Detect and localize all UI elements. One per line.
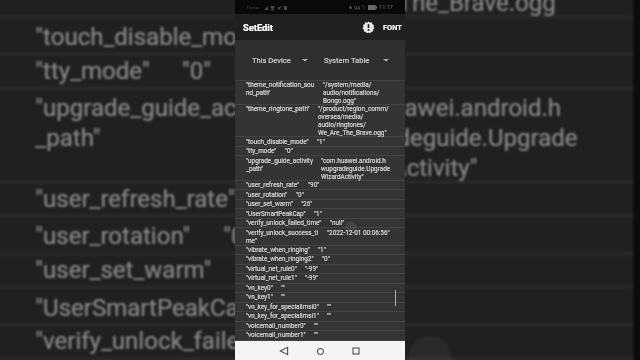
staticText: "verify_unlock_failed_time" bbox=[246, 219, 322, 227]
staticText: "vibrate_when_ringing2" bbox=[246, 255, 314, 263]
staticText: "0" bbox=[182, 56, 212, 86]
button[interactable]: "touch_disable_mode" bbox=[35, 22, 272, 52]
staticText: "90" bbox=[268, 184, 314, 214]
button[interactable]: "user_rotation" bbox=[35, 222, 193, 252]
staticText: "virtual_net_rule0" bbox=[246, 265, 297, 273]
button[interactable]: "vn_key0" bbox=[246, 284, 273, 292]
staticText: FONT bbox=[383, 23, 402, 32]
staticText: "" bbox=[327, 303, 331, 311]
button[interactable]: "user_set_warm" bbox=[246, 200, 293, 208]
button[interactable]: "UserSmartPeakCap" bbox=[35, 293, 261, 323]
button[interactable]: "theme_ringtone_path" bbox=[246, 105, 310, 113]
staticText: "1" bbox=[291, 293, 321, 323]
button[interactable]: This Device bbox=[235, 40, 320, 80]
staticText: "" bbox=[327, 312, 331, 320]
staticText: This Device bbox=[252, 56, 291, 65]
staticText: 11:17 bbox=[379, 4, 393, 11]
staticText: "0" bbox=[285, 147, 293, 155]
staticText: "/product/region_comm/ oversea/media/ au… bbox=[306, 0, 573, 18]
button[interactable]: "tty_mode" bbox=[35, 56, 152, 86]
button[interactable]: "user_refresh_rate" bbox=[246, 181, 300, 189]
staticText: "" bbox=[281, 293, 285, 301]
staticText: "theme_notification_sou nd_path" bbox=[246, 81, 315, 97]
button[interactable]: "upgrade_guide_activity _path" bbox=[35, 94, 287, 154]
staticText: "null" bbox=[330, 219, 345, 227]
staticText: "0" bbox=[322, 255, 330, 263]
staticText: "26" bbox=[301, 200, 313, 208]
button[interactable]: "vn_key1" bbox=[246, 293, 273, 301]
staticText: "user_set_warm" bbox=[35, 255, 212, 285]
button[interactable]: "voicemail_number0" bbox=[246, 322, 306, 330]
staticText: "-99" bbox=[305, 274, 319, 282]
staticText: "upgrade_guide_activity _path" bbox=[35, 94, 287, 154]
staticText: "1" bbox=[318, 246, 326, 254]
staticText: System Table bbox=[324, 56, 370, 65]
staticText: "verify_unlock_success_ti me" bbox=[246, 229, 319, 245]
staticText: "-99" bbox=[305, 265, 319, 273]
button[interactable]: "vibrate_when_ringing" bbox=[246, 246, 310, 254]
button[interactable]: Recents bbox=[347, 342, 365, 360]
button[interactable]: "user_refresh_rate" bbox=[35, 184, 238, 214]
staticText: "user_set_warm" bbox=[246, 200, 293, 208]
staticText: "theme_ringtone_path" bbox=[246, 105, 310, 113]
staticText: "user_rotation" bbox=[35, 222, 193, 252]
staticText: "0" bbox=[296, 191, 304, 199]
button[interactable]: "user_rotation" bbox=[246, 191, 288, 199]
button[interactable]: System Table bbox=[320, 40, 405, 80]
staticText: 94 bbox=[354, 5, 361, 11]
staticText: "/product/region_comm/ oversea/media/ au… bbox=[318, 105, 389, 137]
button[interactable]: "verify_unlock_failed_time" bbox=[35, 327, 321, 357]
button[interactable]: "tty_mode" bbox=[246, 147, 277, 155]
staticText: % bbox=[362, 5, 366, 10]
staticText: "voicemail_number1" bbox=[246, 331, 306, 339]
staticText: "upgrade_guide_activity _path" bbox=[246, 157, 313, 173]
button[interactable]: "vn_key_for_specialimsi1" bbox=[246, 312, 319, 320]
button[interactable]: Warning bbox=[362, 21, 375, 34]
staticText: "user_refresh_rate" bbox=[246, 181, 300, 189]
staticText: "voicemail_number0" bbox=[246, 322, 306, 330]
button[interactable]: "upgrade_guide_activity _path" bbox=[246, 157, 313, 173]
staticText: "1" bbox=[302, 22, 332, 52]
staticText: "vn_key0" bbox=[246, 284, 273, 292]
staticText: "tty_mode" bbox=[246, 147, 277, 155]
staticText: "vn_key_for_specialimsi1" bbox=[246, 312, 319, 320]
staticText: "user_refresh_rate" bbox=[35, 184, 238, 214]
staticText: "touch_disable_mode" bbox=[246, 138, 309, 146]
staticText: "UserSmartPeakCap" bbox=[35, 293, 261, 323]
button[interactable]: Home bbox=[311, 342, 329, 360]
button[interactable]: "user_set_warm" bbox=[35, 255, 212, 285]
staticText: "touch_disable_mode" bbox=[35, 22, 272, 52]
button[interactable]: FONT bbox=[383, 23, 402, 32]
staticText: "virtual_net_rule1" bbox=[246, 274, 297, 282]
button[interactable]: "verify_unlock_failed_time" bbox=[246, 219, 322, 227]
staticText: "2022-12-01 00:06:56" bbox=[327, 229, 390, 237]
button[interactable]: "theme_notification_sou nd_path" bbox=[246, 81, 315, 97]
button[interactable]: "touch_disable_mode" bbox=[246, 138, 309, 146]
staticText: "1" bbox=[317, 138, 325, 146]
staticText: Поток bbox=[247, 5, 260, 10]
staticText: "user_rotation" bbox=[246, 191, 288, 199]
button[interactable]: "vn_key_for_specialimsi0" bbox=[246, 303, 319, 311]
staticText: "26" bbox=[242, 255, 287, 285]
staticText: "" bbox=[314, 331, 318, 339]
button[interactable]: "virtual_net_rule0" bbox=[246, 265, 297, 273]
staticText: "/system/media/ audio/notifications/ Bon… bbox=[323, 81, 380, 105]
staticText: "vn_key_for_specialimsi0" bbox=[246, 303, 319, 311]
staticText: "90" bbox=[308, 181, 320, 189]
staticText: "com.huawei.android.h wupgradeguide.Upgr… bbox=[317, 94, 581, 184]
staticText: "0" bbox=[223, 222, 253, 252]
button[interactable]: "voicemail_number1" bbox=[246, 331, 306, 339]
staticText: "1" bbox=[314, 210, 322, 218]
staticText: "vibrate_when_ringing" bbox=[246, 246, 310, 254]
staticText: "" bbox=[281, 284, 285, 292]
staticText: "null" bbox=[351, 327, 408, 357]
button[interactable]: Back bbox=[275, 342, 293, 360]
staticText: "UserSmartPeakCap" bbox=[246, 210, 306, 218]
staticText: SetEdit bbox=[243, 22, 273, 33]
staticText: "com.huawei.android.h wupgradeguide.Upgr… bbox=[321, 157, 391, 181]
staticText: "" bbox=[314, 322, 318, 330]
button[interactable]: "UserSmartPeakCap" bbox=[246, 210, 306, 218]
button[interactable]: "verify_unlock_success_ti me" bbox=[246, 229, 319, 245]
button[interactable]: "virtual_net_rule1" bbox=[246, 274, 297, 282]
button[interactable]: "vibrate_when_ringing2" bbox=[246, 255, 314, 263]
